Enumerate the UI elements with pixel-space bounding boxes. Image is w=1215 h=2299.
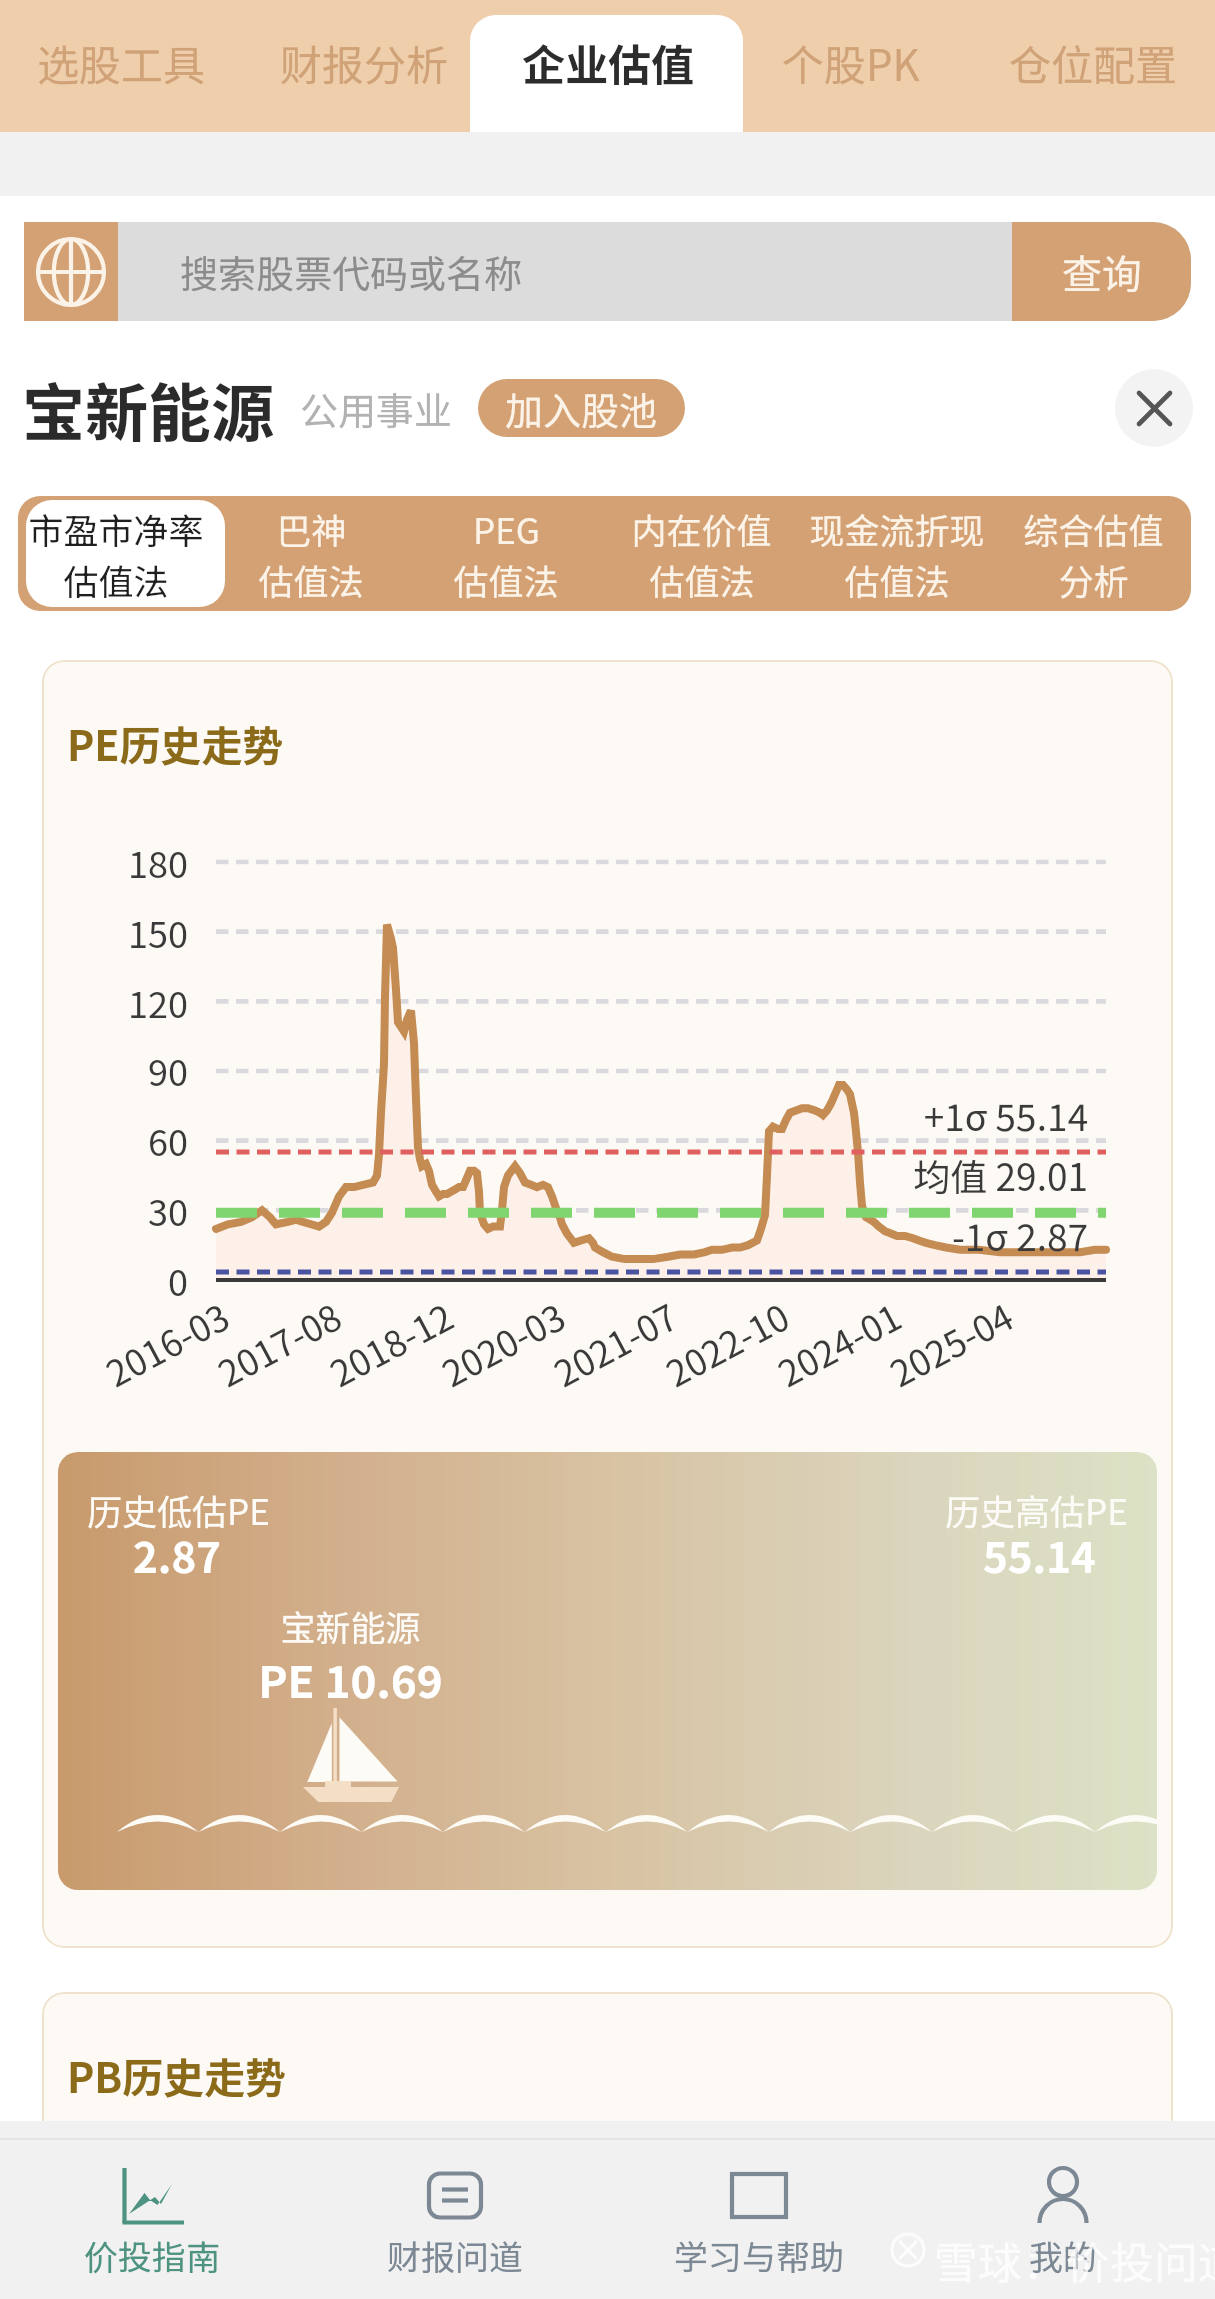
staticText: 估值法 [844,554,950,605]
staticText: 估值法 [63,554,169,605]
button[interactable]: 市盈市净率 [18,496,213,611]
staticText: 60 [148,1114,188,1166]
staticText: 历史低估PE [87,1484,270,1535]
staticText: 内在价值 [631,503,772,554]
staticText: 财报问道 [387,2231,523,2280]
staticText: 综合估值 [1023,503,1164,554]
staticText: 仓位配置 [1009,32,1178,93]
button[interactable]: 学习与帮助 [607,2140,911,2299]
staticText: 估值法 [258,554,364,605]
staticText: -1σ 2.87 [951,1208,1088,1262]
staticText: 企业估值 [522,31,694,93]
staticText: 公用事业 [300,381,453,436]
staticText: 现金流折现 [809,503,985,554]
button[interactable]: 现金流折现 [799,496,995,611]
staticText: 2025-04 [880,1289,1021,1397]
staticText: 90 [148,1044,188,1096]
staticText: 学习与帮助 [674,2231,844,2280]
staticText: 财报分析 [280,32,449,93]
staticText: 市盈市净率 [28,503,204,554]
staticText: 分析 [1058,554,1129,605]
button[interactable]: 选股工具 [0,0,243,132]
staticText: 加入股池 [505,381,658,436]
button[interactable]: Search [24,222,118,321]
button[interactable]: 查询 [1012,222,1191,321]
staticText: 2021-07 [544,1289,685,1397]
staticText: 选股工具 [37,32,206,93]
staticText: PEG [473,503,540,554]
button[interactable]: 个股PK [729,0,972,132]
button[interactable]: 内在价值 [603,496,799,611]
staticText: 120 [128,976,188,1028]
button[interactable]: 综合估值 [995,496,1191,611]
staticText: 我的 [1029,2231,1097,2280]
staticText: 0 [168,1254,188,1306]
staticText: PE历史走势 [67,713,284,772]
staticText: 均值 29.01 [913,1148,1088,1202]
staticText: 查询 [1062,243,1142,301]
staticText: 2018-12 [320,1289,461,1397]
button[interactable]: 仓位配置 [972,0,1215,132]
staticText: 30 [148,1184,188,1236]
staticText: 搜索股票代码或名称 [180,244,523,299]
staticText: 2020-03 [432,1289,573,1397]
staticText: 55.14 [983,1524,1096,1585]
button[interactable]: 财报问道 [303,2140,607,2299]
staticText: 2016-03 [96,1289,237,1397]
staticText: 巴神 [276,503,347,554]
staticText: 估值法 [649,554,755,605]
staticText: 150 [128,906,188,958]
button[interactable]: 加入股池 [478,379,685,437]
staticText: 2017-08 [208,1289,349,1397]
staticText: 估值法 [453,554,559,605]
button[interactable]: 企业估值 [486,0,729,132]
staticText: 2.87 [133,1524,221,1585]
button[interactable]: 巴神 [213,496,408,611]
staticText: 价投指南 [84,2231,220,2280]
button[interactable]: 财报分析 [243,0,486,132]
staticText: 2024-01 [768,1289,909,1397]
staticText: PE 10.69 [258,1647,443,1711]
staticText: 历史高估PE [945,1484,1128,1535]
staticText: 宝新能源 [280,1600,421,1651]
staticText: 宝新能源 [22,363,274,454]
button[interactable]: PEG [408,496,603,611]
button[interactable]: 价投指南 [0,2140,303,2299]
staticText: 2022-10 [656,1289,797,1397]
button[interactable]: 我的 [911,2140,1215,2299]
button[interactable]: Close [1115,369,1193,447]
staticText: 雪球：价投问道 [934,2228,1215,2292]
staticText: 个股PK [782,32,920,93]
staticText: PB历史走势 [67,2045,287,2104]
staticText: 180 [128,836,188,888]
staticText: +1σ 55.14 [923,1088,1088,1142]
